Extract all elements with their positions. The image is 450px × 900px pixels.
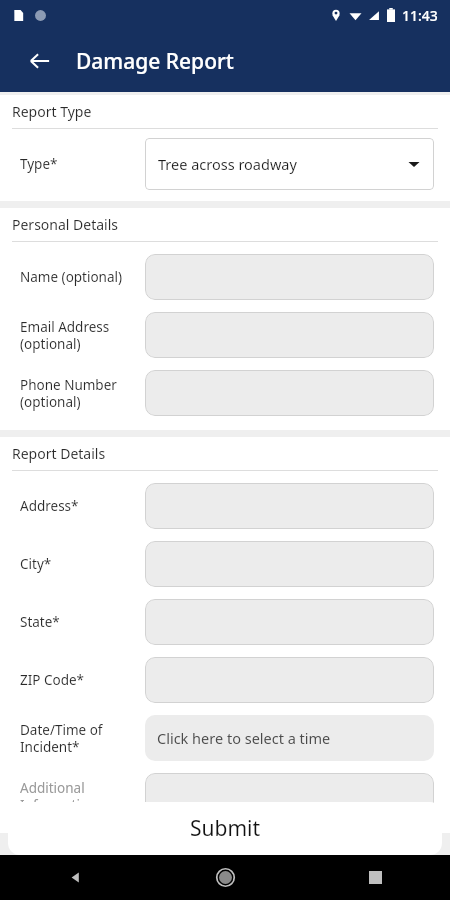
button[interactable]: Address* (0, 477, 450, 535)
button[interactable]: City* (0, 535, 450, 593)
staticText: Click here to select a time (157, 728, 331, 748)
staticText: Report Details (12, 444, 106, 463)
button[interactable] (145, 254, 434, 300)
staticText: Date/Time of Incident* (20, 721, 103, 756)
staticText: Submit (190, 814, 261, 843)
staticText: Personal Details (12, 215, 119, 234)
button[interactable]: Recent apps (352, 855, 398, 900)
button[interactable]: Back (20, 41, 60, 81)
button[interactable] (145, 312, 434, 358)
button[interactable]: Type* (0, 135, 450, 193)
staticText: City* (20, 555, 52, 573)
button[interactable]: Email Address (optional) (0, 306, 450, 364)
staticText: Name (optional) (20, 268, 123, 286)
button[interactable]: ZIP Code* (0, 651, 450, 709)
staticText: 11:43 (402, 6, 438, 25)
button[interactable]: Additional Information (0, 767, 450, 825)
button[interactable]: Submit (8, 802, 442, 855)
staticText: Report Type (12, 102, 92, 121)
button[interactable]: State* (0, 593, 450, 651)
staticText: Damage Report (76, 47, 234, 76)
button[interactable] (145, 599, 434, 645)
button[interactable] (145, 483, 434, 529)
button[interactable]: Phone Number (optional) (0, 364, 450, 422)
button[interactable] (145, 541, 434, 587)
button[interactable]: Back (52, 855, 98, 900)
button[interactable]: Home (202, 855, 248, 900)
staticText: Tree across roadway (158, 154, 297, 174)
staticText: Additional Information (20, 779, 97, 814)
staticText: Email Address (optional) (20, 318, 110, 353)
staticText: Phone Number (optional) (20, 376, 117, 411)
staticText: ZIP Code* (20, 671, 85, 689)
button[interactable] (145, 773, 434, 819)
button[interactable]: Tree across roadway (145, 138, 434, 190)
button[interactable] (145, 657, 434, 703)
button[interactable]: Name (optional) (0, 248, 450, 306)
staticText: Address* (20, 497, 79, 515)
staticText: Type* (20, 155, 58, 173)
staticText: State* (20, 613, 60, 631)
button[interactable]: Click here to select a time (145, 715, 434, 761)
button[interactable]: Date/Time of Incident* (0, 709, 450, 767)
button[interactable] (145, 370, 434, 416)
